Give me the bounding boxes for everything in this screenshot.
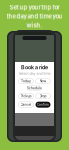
staticText: Today xyxy=(21,79,31,83)
staticText: Cancel xyxy=(20,103,31,107)
staticText: Confirm xyxy=(37,103,49,107)
button[interactable]: Today xyxy=(18,79,33,84)
staticText: Pickup xyxy=(20,94,31,98)
staticText: Now xyxy=(39,79,46,83)
staticText: Select day and time xyxy=(18,71,50,76)
button[interactable]: Schedule xyxy=(28,86,41,91)
staticText: Drop xyxy=(39,94,46,98)
staticText: Book a ride xyxy=(21,64,48,70)
button[interactable]: Drop xyxy=(35,94,50,99)
staticText: the day and time you xyxy=(6,13,62,20)
staticText: wish. xyxy=(26,22,42,29)
button[interactable]: Now xyxy=(35,79,50,84)
button[interactable]: Pickup xyxy=(18,94,33,99)
staticText: Schedule xyxy=(27,86,42,90)
staticText: Set up your trip for xyxy=(9,4,59,11)
button[interactable]: Cancel xyxy=(18,102,33,108)
button[interactable]: Confirm xyxy=(35,102,50,108)
